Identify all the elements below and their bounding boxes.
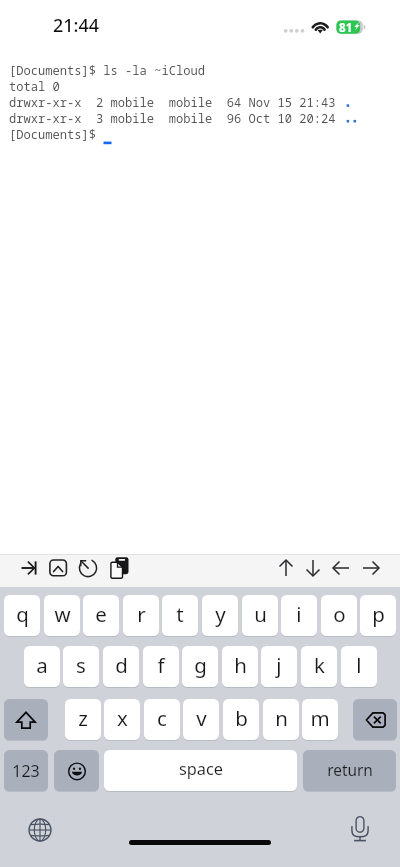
staticText: 123 <box>12 760 40 782</box>
staticText: h <box>234 651 247 679</box>
button[interactable]: Control <box>45 555 71 581</box>
button[interactable]: h <box>222 646 258 687</box>
button[interactable]: Shift <box>4 699 48 740</box>
staticText: o <box>333 600 346 628</box>
staticText: k <box>314 651 325 679</box>
button[interactable]: Paste <box>108 555 134 581</box>
button[interactable]: e <box>83 595 119 636</box>
staticText: s <box>76 651 86 679</box>
button[interactable]: y <box>202 595 238 636</box>
staticText: z <box>78 704 88 732</box>
staticText: total 0 <box>9 78 60 94</box>
staticText: [Documents]$ <box>9 126 104 142</box>
staticText: b <box>235 704 248 732</box>
staticText: r <box>137 600 146 628</box>
button[interactable]: Switch keyboard <box>27 817 53 843</box>
button[interactable]: u <box>242 595 278 636</box>
button[interactable]: f <box>143 646 179 687</box>
staticText: u <box>254 600 267 628</box>
staticText: return <box>327 760 373 781</box>
button[interactable]: Dictation <box>347 816 373 842</box>
button[interactable]: s <box>63 646 99 687</box>
button[interactable]: p <box>360 595 396 636</box>
staticText: a <box>36 651 48 679</box>
staticText: y <box>215 600 226 628</box>
staticText: drwxr-xr-x 2 mobile mobile 64 Nov 15 21:… <box>9 94 343 110</box>
staticText: w <box>54 600 71 628</box>
staticText: space <box>179 758 223 780</box>
button[interactable]: c <box>144 699 180 740</box>
button[interactable]: Up <box>273 555 299 581</box>
staticText: x <box>117 704 128 732</box>
staticText: q <box>16 600 29 628</box>
button[interactable]: Tab <box>18 555 44 581</box>
button[interactable]: v <box>183 699 219 740</box>
button[interactable]: Right <box>358 555 384 581</box>
staticText: e <box>95 600 107 628</box>
staticText: l <box>356 651 362 679</box>
button[interactable]: Emoji <box>54 750 99 791</box>
button[interactable]: space <box>104 750 297 791</box>
button[interactable]: n <box>263 699 299 740</box>
button[interactable]: Backspace <box>353 699 397 740</box>
button[interactable]: g <box>182 646 218 687</box>
staticText: 21:44 <box>53 13 100 38</box>
staticText: d <box>115 651 128 679</box>
button[interactable]: i <box>281 595 317 636</box>
staticText: 81 <box>339 20 353 36</box>
staticText: i <box>296 600 302 628</box>
button[interactable]: 123 <box>4 750 48 791</box>
staticText: c <box>157 704 167 732</box>
button[interactable]: m <box>302 699 338 740</box>
button[interactable]: return <box>303 750 396 791</box>
staticText: v <box>196 704 207 732</box>
button[interactable]: a <box>24 646 60 687</box>
staticText: g <box>194 651 207 679</box>
button[interactable]: History <box>75 555 101 581</box>
button[interactable]: q <box>4 595 40 636</box>
staticText: drwxr-xr-x 3 mobile mobile 96 Oct 10 20:… <box>9 110 343 126</box>
button[interactable]: l <box>341 646 377 687</box>
staticText: t <box>176 600 184 628</box>
staticText: j <box>276 651 282 679</box>
button[interactable]: o <box>321 595 357 636</box>
staticText: n <box>275 704 288 732</box>
button[interactable]: j <box>261 646 297 687</box>
staticText: m <box>310 704 330 732</box>
button[interactable]: x <box>104 699 140 740</box>
button[interactable]: b <box>223 699 259 740</box>
button[interactable]: t <box>162 595 198 636</box>
button[interactable]: d <box>103 646 139 687</box>
button[interactable]: z <box>65 699 101 740</box>
button[interactable]: Down <box>300 555 326 581</box>
staticText: f <box>157 651 165 679</box>
staticText: p <box>372 600 385 628</box>
button[interactable]: w <box>44 595 80 636</box>
staticText: [Documents]$ ls -la ~iCloud <box>9 62 205 78</box>
button[interactable]: Left <box>328 555 354 581</box>
button[interactable]: r <box>123 595 159 636</box>
button[interactable]: k <box>301 646 337 687</box>
